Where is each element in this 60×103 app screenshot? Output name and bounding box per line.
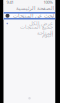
- button[interactable]: ابحث عن المنتجات: [3, 12, 55, 19]
- staticText: 100%: [43, 0, 52, 5]
- staticText: الصفحة الرئيسية: [15, 5, 53, 11]
- staticText: اليوم: [41, 32, 52, 38]
- staticText: 9:41: [6, 0, 13, 5]
- staticText: عرض الكل: [28, 20, 52, 27]
- staticText: ابحث عن المنتجات: [12, 13, 53, 19]
- staticText: جميع المنتجات المتاحة: [19, 24, 52, 36]
